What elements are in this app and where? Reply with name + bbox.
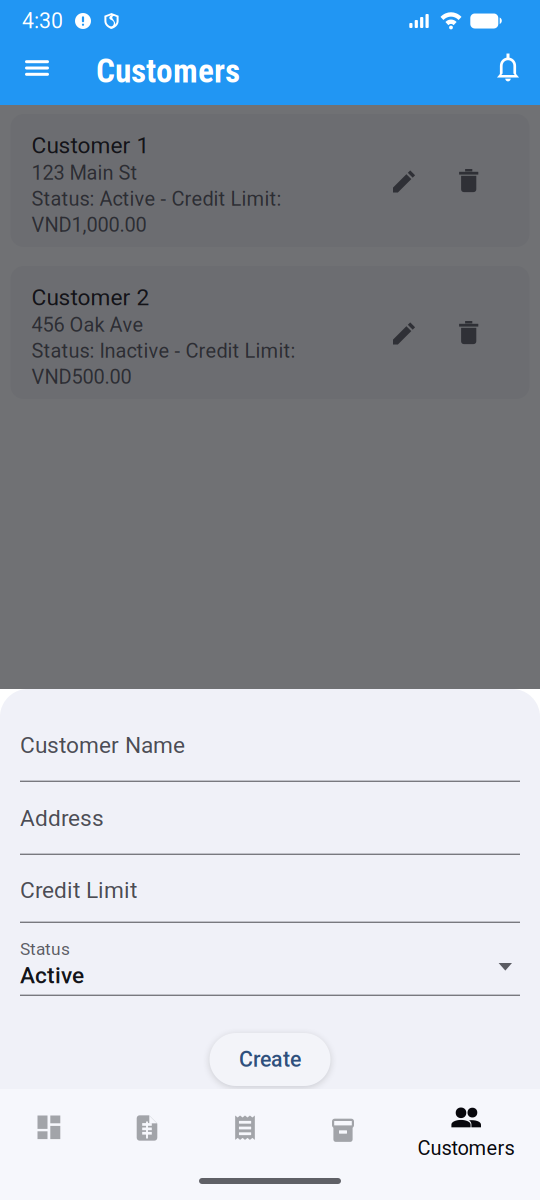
button[interactable]: Dashboard — [0, 1089, 98, 1187]
button[interactable]: Edit Customer 1 — [378, 153, 430, 209]
button[interactable]: Receipts — [196, 1089, 294, 1187]
staticText: Customers — [417, 1136, 514, 1160]
staticText: Customer 2 — [31, 284, 149, 311]
staticText: VND500.00 — [31, 365, 131, 389]
staticText: Active — [20, 962, 84, 989]
staticText: Customer Name — [20, 732, 185, 759]
staticText: Customers — [96, 51, 240, 91]
button[interactable]: Notifications — [482, 42, 534, 94]
button[interactable]: Edit Customer 2 — [378, 305, 430, 361]
button[interactable]: Inventory — [294, 1089, 392, 1188]
staticText: Customer 1 — [31, 132, 149, 159]
button[interactable]: Invoices — [98, 1090, 196, 1187]
staticText: Create — [239, 1047, 301, 1072]
staticText: Credit Limit — [20, 877, 137, 904]
staticText: Status: Inactive - Credit Limit: — [31, 339, 295, 363]
staticText: 456 Oak Ave — [31, 313, 143, 337]
staticText: VND1,000.00 — [31, 213, 146, 237]
button[interactable]: Menu — [11, 42, 63, 94]
button[interactable]: Delete Customer 2 — [442, 305, 494, 361]
staticText: 123 Main St — [31, 161, 137, 185]
button[interactable]: Create — [209, 1033, 330, 1086]
staticText: Status — [20, 939, 70, 959]
button[interactable]: Customers — [392, 1089, 540, 1187]
button[interactable]: Delete Customer 1 — [442, 153, 494, 209]
staticText: 4:30 — [22, 8, 63, 33]
staticText: Status: Active - Credit Limit: — [31, 187, 281, 211]
staticText: Address — [20, 805, 104, 832]
